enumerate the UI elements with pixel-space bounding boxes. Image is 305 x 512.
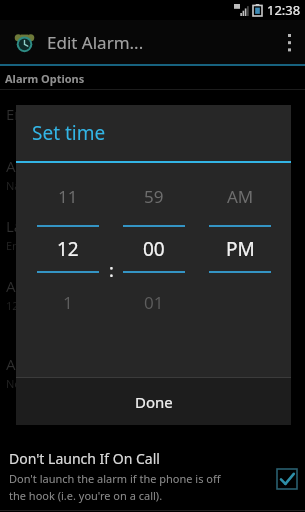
staticText: 11 — [58, 185, 78, 208]
staticText: 12 — [57, 236, 79, 262]
staticText: Name — [6, 178, 38, 193]
button[interactable]: PM — [204, 227, 276, 271]
staticText: None — [6, 376, 35, 391]
button[interactable]: 11 — [32, 179, 104, 213]
staticText: Edit Alarm... — [47, 31, 144, 54]
button[interactable]: Done — [16, 378, 291, 425]
button[interactable]: More options — [273, 20, 305, 64]
staticText: 12:38 — [267, 1, 301, 19]
staticText: Alarm Time — [6, 276, 87, 296]
staticText: the hook (i.e. you're on a call). — [9, 488, 163, 503]
staticText: 01 — [144, 291, 164, 314]
staticText: AM — [227, 185, 254, 208]
staticText: 59 — [144, 185, 164, 208]
staticText: Enabled — [6, 104, 63, 124]
button[interactable]: Enabled — [0, 98, 305, 150]
button[interactable]: 01 — [118, 285, 190, 319]
button[interactable]: 59 — [118, 179, 190, 213]
button[interactable]: 00 — [118, 227, 190, 271]
button[interactable]: AM — [204, 179, 276, 213]
staticText: : — [109, 258, 114, 283]
button[interactable]: Alarm Sound — [0, 348, 305, 408]
staticText: 1 — [63, 291, 73, 314]
staticText: 00 — [143, 236, 165, 262]
staticText: 12:38 — [6, 298, 35, 313]
staticText: Enter label — [6, 238, 62, 253]
button[interactable]: Alarm Time — [0, 270, 305, 348]
staticText: Alarm Name — [6, 156, 95, 176]
staticText: Set time — [32, 120, 106, 146]
staticText: Done — [135, 392, 173, 412]
staticText: Label — [6, 216, 44, 236]
button[interactable]: 12 — [32, 227, 104, 271]
button[interactable]: Alarm Name — [0, 150, 305, 210]
staticText: Alarm Options — [5, 71, 85, 86]
button[interactable]: 1 — [32, 285, 104, 319]
staticText: Don't Launch If On Call — [9, 449, 160, 468]
button[interactable]: Label — [0, 210, 305, 270]
staticText: PM — [226, 236, 255, 262]
button[interactable]: Don't Launch If On Call — [0, 443, 305, 512]
staticText: Don't launch the alarm if the phone is o… — [9, 471, 221, 486]
staticText: Alarm Sound — [6, 354, 98, 374]
